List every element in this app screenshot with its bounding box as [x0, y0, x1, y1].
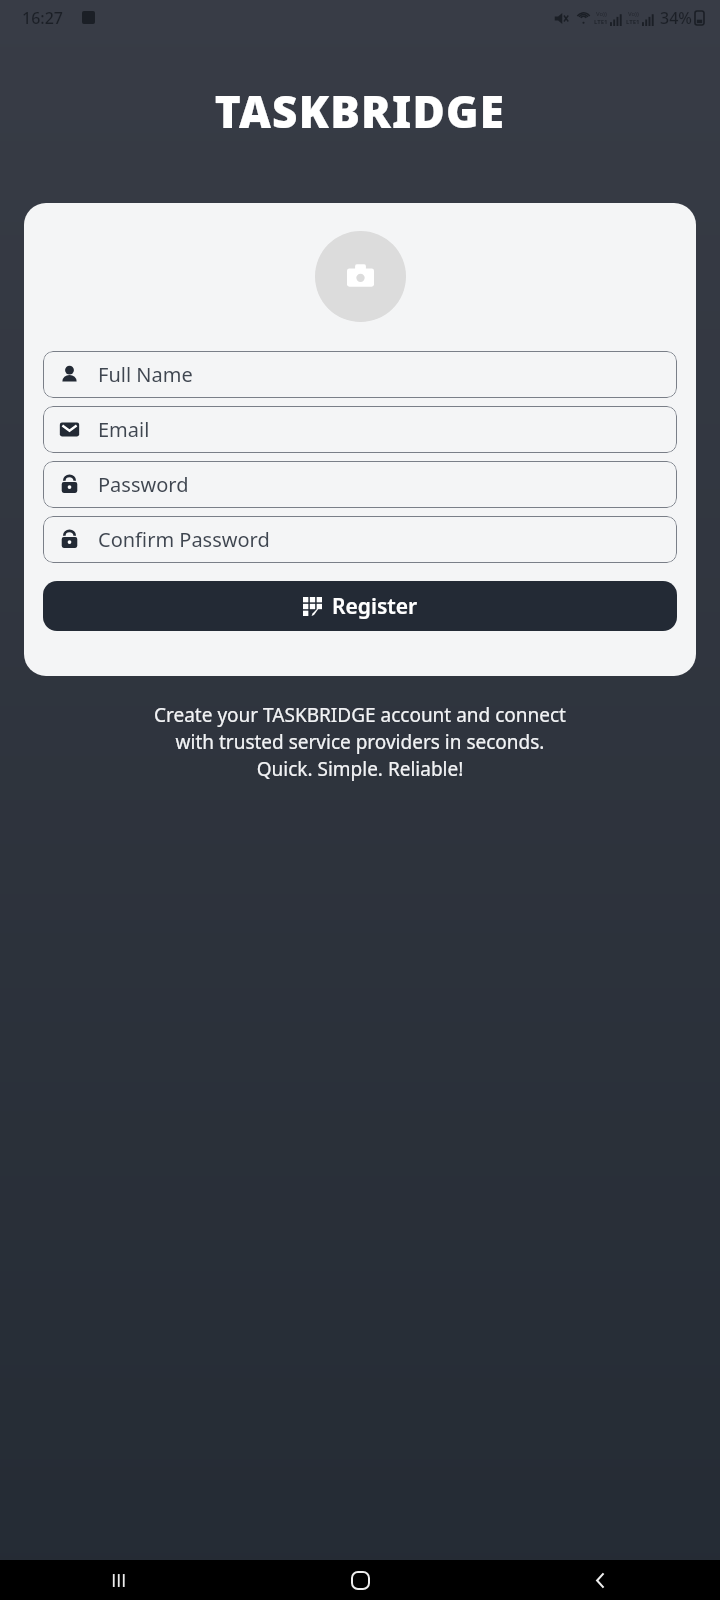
button[interactable]: Register	[43, 581, 677, 631]
staticText: Password	[98, 471, 189, 498]
staticText: Register	[332, 592, 418, 621]
staticText: Vo))	[596, 10, 607, 18]
button[interactable]: Back	[480, 1560, 720, 1600]
staticText: 16:27	[22, 7, 63, 29]
button[interactable]: Email	[43, 406, 677, 453]
staticText: LTE1	[626, 18, 640, 26]
button[interactable]: Add profile photo	[315, 231, 406, 322]
staticText: 34%	[660, 7, 692, 29]
staticText: Email	[98, 416, 150, 443]
staticText: TASKBRIDGE	[0, 81, 720, 141]
staticText: Vo))	[628, 10, 639, 18]
button[interactable]: Recents	[0, 1560, 240, 1600]
button[interactable]: Confirm Password	[43, 516, 677, 563]
staticText: Create your TASKBRIDGE account and conne…	[20, 702, 700, 782]
staticText: LTE1	[594, 18, 608, 26]
staticText: Confirm Password	[98, 526, 270, 553]
staticText: Full Name	[98, 361, 193, 388]
button[interactable]: Full Name	[43, 351, 677, 398]
button[interactable]: Password	[43, 461, 677, 508]
button[interactable]: Home	[240, 1560, 480, 1600]
